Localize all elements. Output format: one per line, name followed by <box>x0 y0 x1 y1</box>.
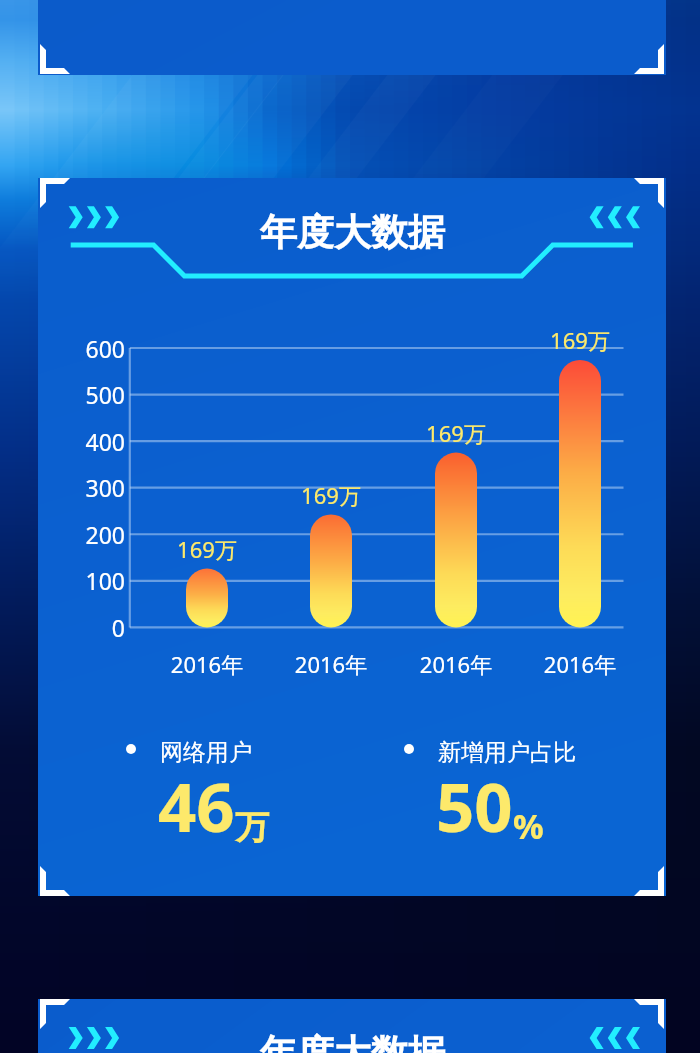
button[interactable]: 新增用户占比 <box>404 738 654 843</box>
staticText: 年度大数据 <box>260 1030 445 1053</box>
staticText: 网络用户 <box>160 738 252 767</box>
staticText: 50 <box>436 760 513 851</box>
staticText: 2016年 <box>261 649 401 679</box>
button[interactable]: 网络用户 <box>126 738 376 843</box>
staticText: 100 <box>38 565 125 596</box>
button[interactable]: 年度大数据 <box>38 209 666 256</box>
button[interactable]: 169万 <box>396 418 516 448</box>
staticText: 年度大数据 <box>260 209 445 256</box>
staticText: 新增用户占比 <box>438 738 576 767</box>
button[interactable]: 年度大数据 <box>38 999 666 1053</box>
staticText: 500 <box>38 379 125 410</box>
button[interactable]: 169万 <box>520 325 640 355</box>
button[interactable] <box>38 0 666 75</box>
staticText: 2016年 <box>510 649 650 679</box>
staticText: 300 <box>38 472 125 503</box>
staticText: 万 <box>235 806 269 849</box>
staticText: % <box>513 803 544 849</box>
staticText: 2016年 <box>386 649 526 679</box>
button[interactable]: 169万 <box>147 534 267 564</box>
staticText: 200 <box>38 519 125 550</box>
staticText: 400 <box>38 426 125 457</box>
button[interactable]: 169万 <box>271 480 391 510</box>
staticText: 0 <box>38 612 125 643</box>
staticText: 46 <box>158 760 235 851</box>
staticText: 2016年 <box>137 649 277 679</box>
staticText: 600 <box>38 333 125 364</box>
